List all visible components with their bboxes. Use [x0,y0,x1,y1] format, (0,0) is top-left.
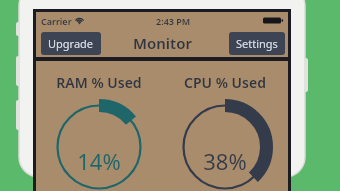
button[interactable]: Settings [229,32,285,55]
staticText: RAM % Used [56,73,142,92]
staticText: Upgrade [48,36,94,51]
staticText: CPU % Used [184,73,266,92]
button[interactable]: RAM % Used [36,61,162,191]
staticText: 38% [203,146,247,176]
staticText: Monitor [133,33,192,53]
button[interactable]: CPU % Used [162,61,288,191]
staticText: 14% [77,146,121,176]
staticText: Carrier [41,15,72,27]
staticText: Settings [236,36,278,51]
button[interactable]: Upgrade [41,32,101,55]
staticText: 2:43 PM [156,15,191,27]
